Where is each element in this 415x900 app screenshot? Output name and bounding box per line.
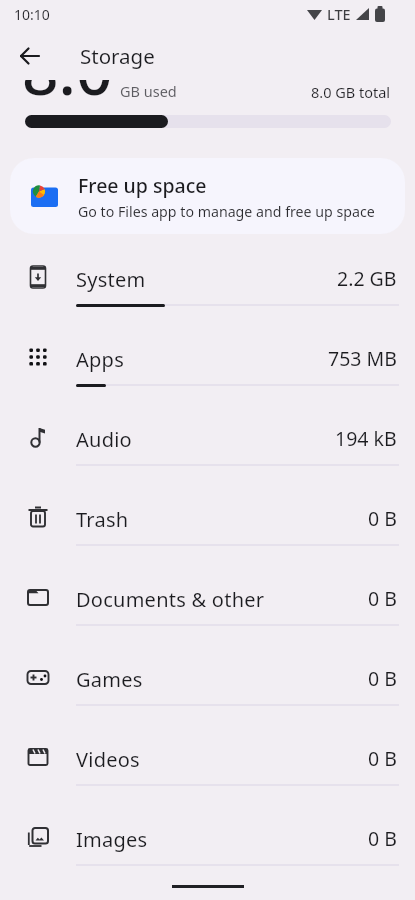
staticText: Images xyxy=(76,826,148,853)
staticText: Videos xyxy=(76,746,140,773)
button[interactable] xyxy=(10,36,50,76)
button[interactable]: Videos xyxy=(0,718,415,798)
staticText: Documents & other xyxy=(76,586,265,613)
staticText: Trash xyxy=(76,506,129,533)
staticText: 8.0 xyxy=(22,80,134,97)
staticText: 0 B xyxy=(368,745,397,772)
button[interactable]: Apps xyxy=(0,318,415,398)
staticText: 753 MB xyxy=(328,345,397,372)
button[interactable]: Free up space xyxy=(10,158,405,234)
staticText: Storage xyxy=(80,42,155,70)
staticText: GB used xyxy=(120,81,177,101)
staticText: System xyxy=(76,266,146,293)
button[interactable]: Documents & other xyxy=(0,558,415,638)
staticText: Free up space xyxy=(78,172,207,199)
staticText: 0 B xyxy=(368,665,397,692)
button[interactable]: Audio xyxy=(0,398,415,478)
staticText: 0 B xyxy=(368,585,397,612)
staticText: 194 kB xyxy=(335,425,397,452)
staticText: Audio xyxy=(76,426,132,453)
staticText: LTE xyxy=(327,4,351,24)
button[interactable]: Images xyxy=(0,798,415,878)
staticText: Games xyxy=(76,666,143,693)
button[interactable]: Trash xyxy=(0,478,415,558)
staticText: 8.0 GB total xyxy=(311,82,391,102)
staticText: 10:10 xyxy=(14,5,50,24)
staticText: Apps xyxy=(76,346,124,373)
staticText: 0 B xyxy=(368,505,397,532)
staticText: Go to Files app to manage and free up sp… xyxy=(78,202,375,221)
button[interactable]: System xyxy=(0,238,415,318)
staticText: 0 B xyxy=(368,825,397,852)
button[interactable]: Games xyxy=(0,638,415,718)
staticText: 2.2 GB xyxy=(337,265,397,292)
